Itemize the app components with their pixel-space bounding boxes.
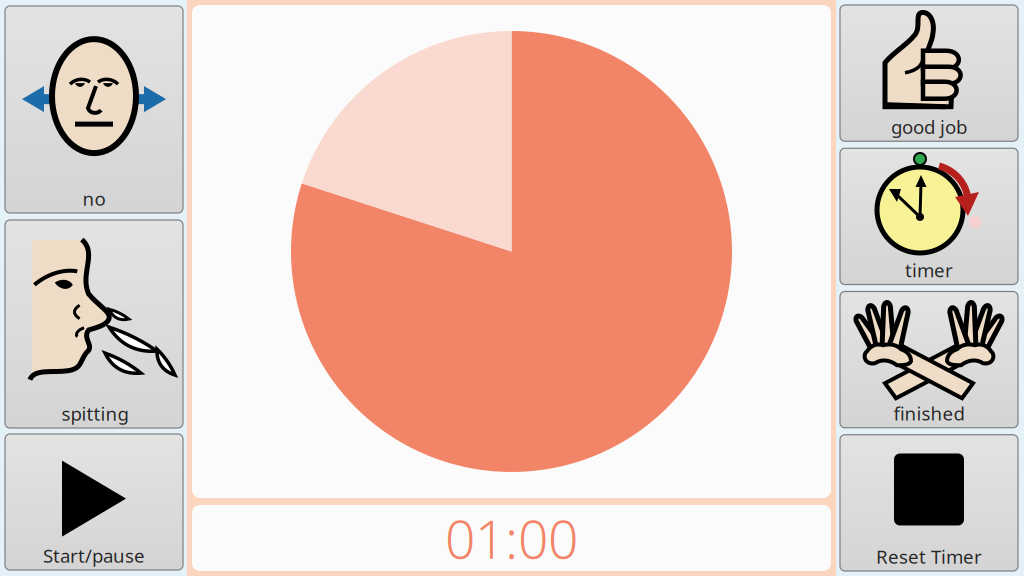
staticText: timer bbox=[905, 258, 953, 282]
button[interactable]: Reset Timer bbox=[840, 435, 1018, 571]
staticText: spitting bbox=[61, 401, 128, 426]
button[interactable]: finished bbox=[840, 291, 1018, 428]
staticText: finished bbox=[893, 401, 964, 426]
button[interactable]: Start/pause bbox=[5, 434, 183, 570]
staticText: Start/pause bbox=[43, 543, 145, 568]
button[interactable]: timer bbox=[840, 148, 1018, 284]
staticText: no bbox=[82, 186, 105, 211]
button[interactable]: good job bbox=[840, 5, 1018, 141]
staticText: good job bbox=[891, 114, 967, 139]
staticText: 01:00 bbox=[445, 503, 578, 573]
staticText: Reset Timer bbox=[876, 544, 982, 569]
button[interactable]: no bbox=[5, 6, 183, 213]
button[interactable]: spitting bbox=[5, 220, 183, 428]
